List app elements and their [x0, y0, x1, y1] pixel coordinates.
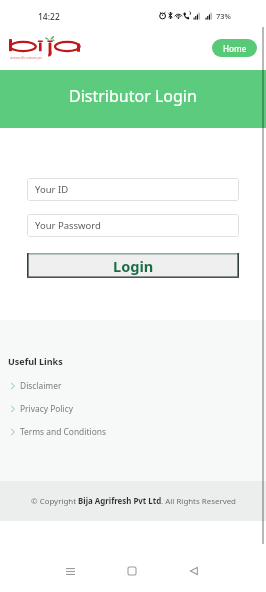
staticText: Disclaimer: [20, 380, 62, 391]
staticText: Terms and Conditions: [20, 426, 106, 437]
button[interactable]: Your ID: [27, 178, 239, 201]
button[interactable]: Privacy Policy: [0, 397, 266, 420]
staticText: Useful Links: [8, 355, 63, 367]
button[interactable]: Back: [178, 555, 210, 587]
button[interactable]: Recent apps: [54, 555, 86, 587]
staticText: nurtures life. nurtures you: [10, 56, 42, 60]
button[interactable]: Home: [212, 39, 257, 57]
button[interactable]: Your Password: [27, 214, 239, 237]
staticText: 14:22: [38, 11, 60, 23]
staticText: Your Password: [35, 219, 101, 232]
staticText: Distributor Login: [69, 85, 197, 107]
staticText: Your ID: [35, 183, 69, 196]
button[interactable]: Disclaimer: [0, 374, 266, 397]
button[interactable]: Login: [27, 253, 239, 278]
staticText: Home: [223, 43, 247, 54]
button[interactable]: Terms and Conditions: [0, 420, 266, 443]
staticText: 73%: [216, 11, 231, 21]
staticText: Privacy Policy: [20, 403, 73, 414]
button[interactable]: Home: [116, 555, 148, 587]
staticText: Login: [113, 256, 154, 276]
staticText: © Copyright Bija Agrifresh Pvt Ltd. All …: [31, 496, 236, 507]
